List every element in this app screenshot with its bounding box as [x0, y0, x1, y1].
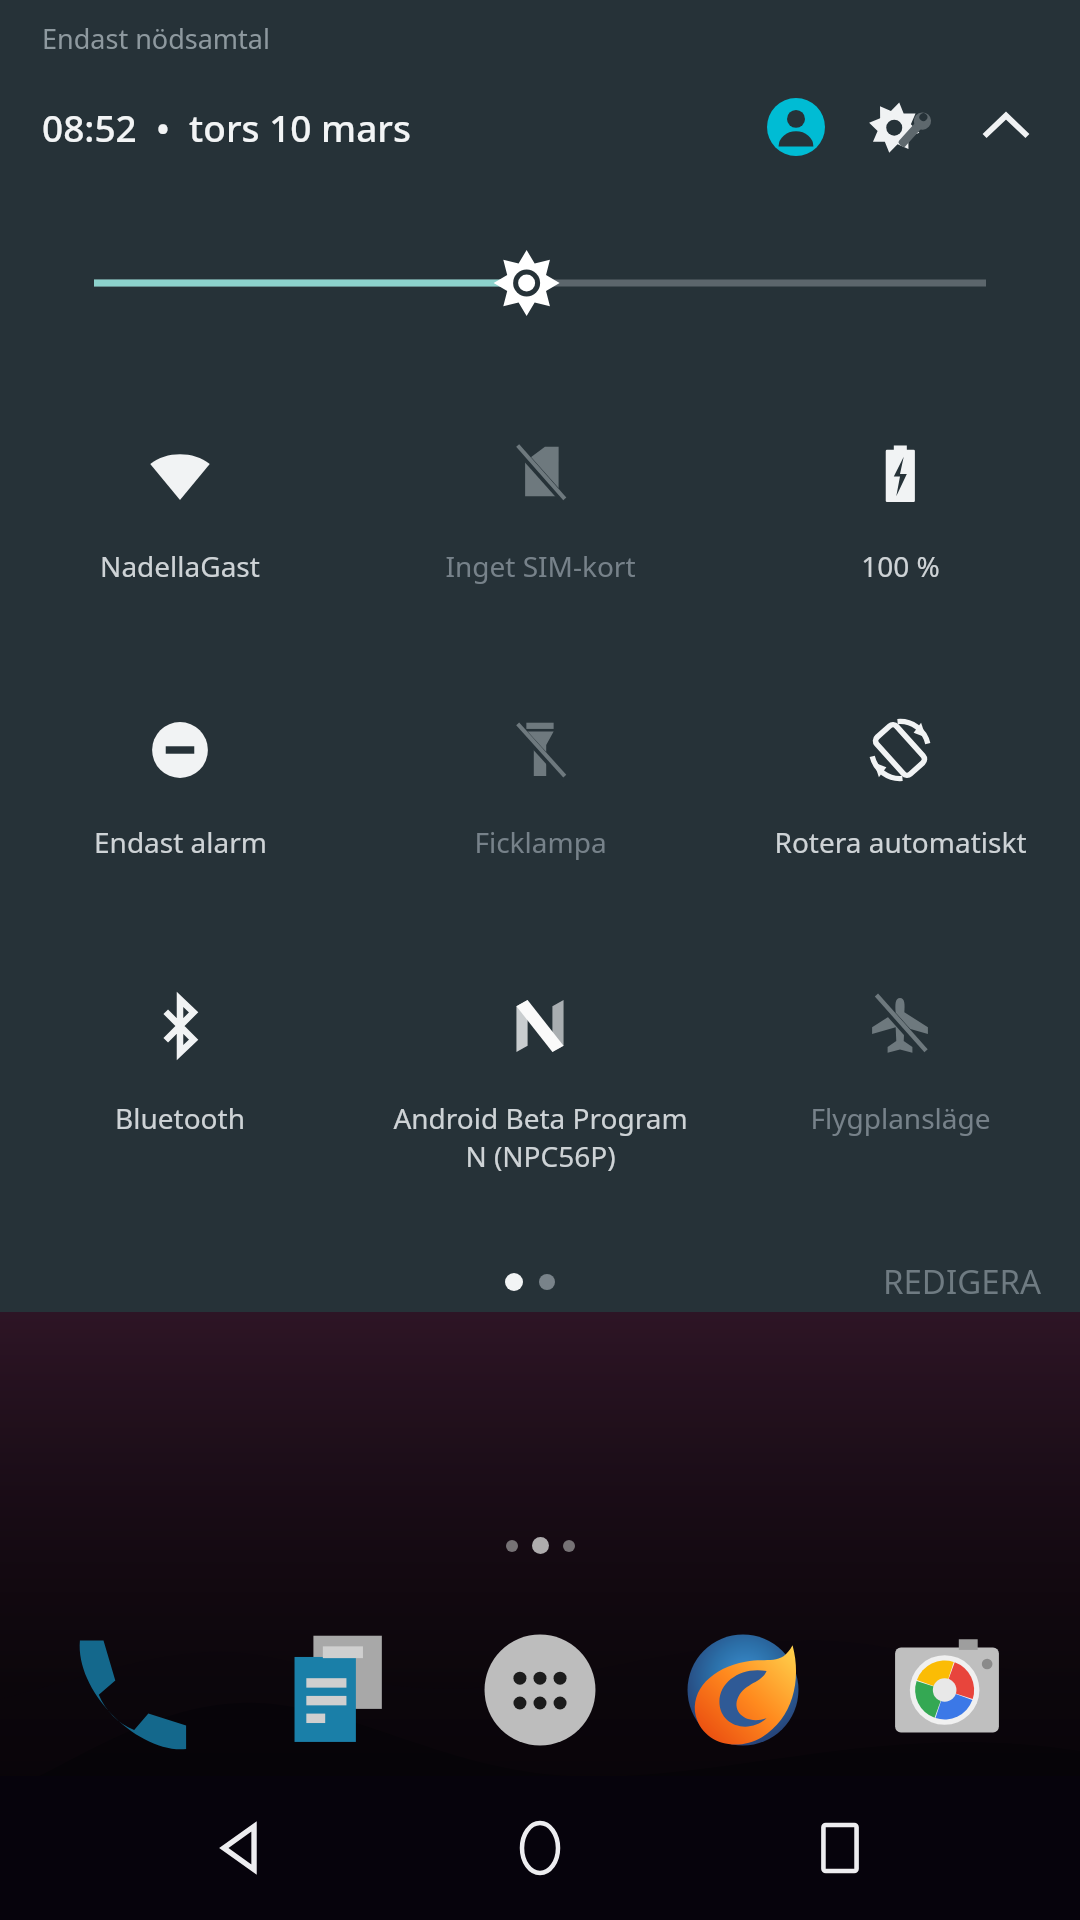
staticText: NadellaGast: [100, 547, 260, 585]
button[interactable]: Camera: [877, 1620, 1017, 1760]
staticText: 100 %: [861, 547, 940, 585]
button[interactable]: Ficklampa: [360, 705, 720, 975]
button[interactable]: Firefox: [673, 1620, 813, 1760]
button[interactable]: Home: [480, 1788, 600, 1908]
button[interactable]: Messages: [267, 1620, 407, 1760]
staticText: REDIGERA: [883, 1259, 1042, 1304]
staticText: Inget SIM-kort: [445, 547, 636, 585]
button[interactable]: Back: [180, 1788, 300, 1908]
button[interactable]: NadellaGast: [0, 429, 360, 699]
button[interactable]: Settings: [858, 85, 942, 169]
staticText: Rotera automatiskt: [774, 823, 1027, 861]
button[interactable]: Inget SIM-kort: [360, 429, 720, 699]
button[interactable]: Rotera automatiskt: [720, 705, 1080, 975]
button[interactable]: Collapse: [966, 87, 1046, 167]
staticText: 08:52 • tors 10 mars: [42, 102, 411, 152]
button[interactable]: Endast alarm: [0, 705, 360, 975]
staticText: Endast alarm: [94, 823, 267, 861]
button[interactable]: Brightness: [0, 247, 1080, 319]
button[interactable]: [34, 418, 1046, 581]
staticText: N (NPC56P): [465, 1137, 616, 1175]
button[interactable]: Bluetooth: [0, 981, 360, 1251]
button[interactable]: User: [756, 87, 836, 167]
button[interactable]: All apps: [470, 1620, 610, 1760]
staticText: Android Beta Program: [393, 1099, 688, 1137]
button[interactable]: REDIGERA: [875, 1251, 1050, 1312]
staticText: Flygplansläge: [810, 1099, 991, 1137]
button[interactable]: Phone: [63, 1620, 203, 1760]
button[interactable]: Android Beta Program: [360, 981, 720, 1251]
button[interactable]: 100 %: [720, 429, 1080, 699]
staticText: Bluetooth: [115, 1099, 245, 1137]
staticText: Ficklampa: [474, 823, 607, 861]
button[interactable]: Recents: [780, 1788, 900, 1908]
staticText: Endast nödsamtal: [42, 20, 270, 57]
button[interactable]: Flygplansläge: [720, 981, 1080, 1251]
